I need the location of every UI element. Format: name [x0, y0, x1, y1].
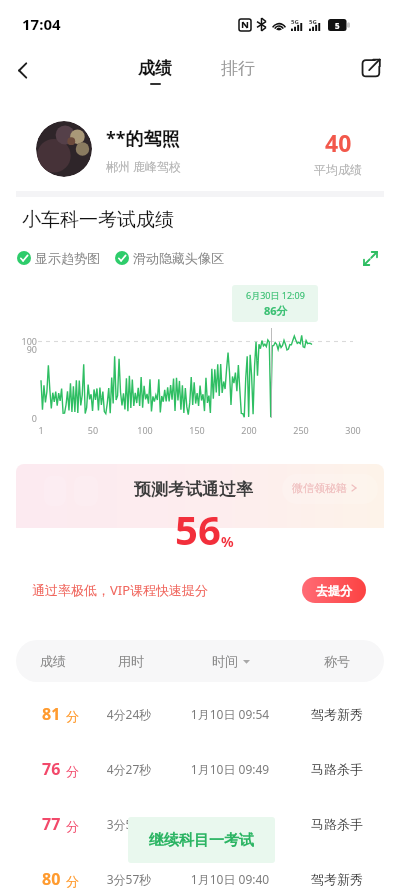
button[interactable]: 76 [0, 741, 400, 796]
staticText: 300 [339, 424, 367, 436]
staticText: 1月10日 09:44 [182, 816, 278, 832]
button[interactable]: 去提分 [302, 577, 366, 603]
staticText: 马路杀手 [297, 816, 377, 832]
staticText: 5 [335, 20, 340, 31]
staticText: 驾考新秀 [297, 871, 377, 887]
staticText: 200 [235, 424, 263, 436]
staticText: 称号 [324, 653, 350, 669]
staticText: 时间 [212, 653, 238, 669]
staticText: 微信领秘籍 [292, 481, 347, 495]
staticText: 预测考试通过率 [134, 479, 253, 500]
button[interactable]: Avatar [36, 121, 92, 177]
staticText: 成绩 [40, 653, 66, 669]
staticText: 分 [66, 873, 79, 889]
staticText: 17:04 [22, 14, 61, 34]
button[interactable]: 微信领秘籍 [292, 481, 358, 495]
staticText: 56 [175, 502, 221, 556]
staticText: 5G [291, 18, 299, 26]
staticText: 5G [309, 18, 317, 26]
button[interactable]: 77 [0, 796, 400, 851]
button[interactable]: Back [4, 52, 40, 88]
button[interactable]: 继续科目一考试 [128, 817, 275, 863]
staticText: 1月10日 09:54 [182, 706, 278, 722]
staticText: 分 [66, 708, 79, 724]
staticText: 77 [42, 813, 61, 835]
staticText: 76 [42, 758, 61, 780]
button[interactable]: Share [356, 54, 386, 84]
staticText: 用时 [118, 653, 144, 669]
staticText: 250 [287, 424, 315, 436]
staticText: 4分27秒 [94, 761, 164, 777]
button[interactable]: 显示趋势图 [17, 246, 100, 270]
staticText: 1 [27, 424, 55, 436]
staticText: 去提分 [316, 583, 352, 598]
staticText: 通过率极低，VIP课程快速提分 [32, 581, 209, 599]
staticText: 郴州 鹿峰驾校 [106, 158, 182, 174]
staticText: % [221, 532, 234, 551]
staticText: 继续科目一考试 [149, 831, 254, 850]
button[interactable]: 80 [0, 851, 400, 894]
staticText: 分 [66, 818, 79, 834]
staticText: 3分57秒 [94, 871, 164, 887]
staticText: 81 [42, 703, 61, 725]
staticText: 1月10日 09:49 [182, 761, 278, 777]
staticText: 100 [131, 424, 159, 436]
button[interactable]: 时间 [212, 653, 250, 669]
staticText: 小车科一考试成绩 [22, 208, 174, 232]
button[interactable]: 滑动隐藏头像区 [115, 246, 224, 270]
staticText: 86分 [264, 303, 288, 318]
staticText: 150 [183, 424, 211, 436]
staticText: 1月10日 09:40 [182, 871, 278, 887]
staticText: 80 [42, 868, 61, 890]
staticText: 50 [79, 424, 107, 436]
staticText: 40 [325, 127, 352, 158]
staticText: 6月30日 12:09 [246, 289, 305, 301]
staticText: 4分24秒 [94, 706, 164, 722]
button[interactable]: 成绩 [132, 52, 178, 91]
staticText: 排行 [221, 58, 255, 79]
button[interactable]: 排行 [215, 52, 261, 85]
staticText: 平均成绩 [314, 162, 362, 177]
staticText: 100 [9, 335, 37, 347]
button[interactable]: 81 [0, 686, 400, 741]
staticText: 滑动隐藏头像区 [133, 250, 224, 266]
button[interactable]: Fullscreen [358, 246, 382, 270]
staticText: 显示趋势图 [35, 250, 100, 266]
staticText: 分 [66, 763, 79, 779]
staticText: 3分55秒 [94, 816, 164, 832]
staticText: 成绩 [138, 58, 172, 79]
staticText: **的驾照 [106, 126, 180, 151]
staticText: 驾考新秀 [297, 706, 377, 722]
staticText: 90 [9, 343, 37, 355]
staticText: 马路杀手 [297, 761, 377, 777]
staticText: 0 [9, 412, 37, 424]
